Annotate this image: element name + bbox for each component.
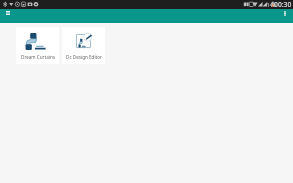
staticText: Dc Design Editor	[66, 54, 102, 60]
button[interactable]: Open navigation drawer	[1, 9, 15, 17]
staticText: 00:30	[274, 0, 292, 9]
button[interactable]: More options	[279, 9, 290, 17]
staticText: Dream Curtains	[21, 54, 55, 60]
button[interactable]: Dream Curtains	[16, 27, 59, 64]
staticText: 14%	[267, 2, 277, 8]
button[interactable]: Dc Design Editor	[62, 27, 105, 64]
